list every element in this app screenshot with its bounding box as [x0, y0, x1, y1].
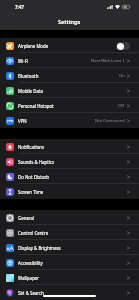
button[interactable]: Sounds & Haptics	[0, 154, 139, 169]
staticText: Next Web Lines 1	[91, 58, 125, 64]
staticText: Control Centre	[18, 230, 49, 236]
button[interactable]: Wi-Fi	[0, 53, 139, 68]
staticText: 7:47	[15, 4, 24, 10]
staticText: Airplane Mode	[18, 43, 49, 49]
button[interactable]: Bluetooth	[0, 68, 139, 83]
staticText: On	[119, 73, 125, 79]
button[interactable]: Personal Hotspot	[0, 98, 139, 113]
staticText: Notifications	[18, 144, 45, 150]
staticText: Do Not Disturb	[18, 174, 49, 180]
staticText: Settings	[58, 18, 81, 26]
button[interactable]: Notifications	[0, 139, 139, 154]
staticText: Screen Time	[18, 189, 44, 195]
staticText: Mobile Data	[18, 88, 43, 94]
button[interactable]: Wallpaper	[0, 270, 139, 285]
button[interactable]: Control Centre	[0, 225, 139, 240]
button[interactable]: VPN	[0, 113, 139, 128]
staticText: VPN	[18, 118, 27, 124]
button[interactable]: Airplane Mode	[0, 38, 139, 53]
staticText: Accessibility	[18, 260, 43, 266]
button[interactable]: Accessibility	[0, 255, 139, 270]
staticText: Wi-Fi	[18, 58, 29, 64]
button[interactable]: Display & Brightness	[0, 240, 139, 255]
button[interactable]: General	[0, 210, 139, 225]
staticText: Off	[118, 103, 125, 109]
staticText: General	[18, 215, 35, 221]
staticText: Siri & Search	[18, 290, 44, 296]
staticText: Not Connected	[95, 118, 125, 124]
staticText: Sounds & Haptics	[18, 159, 55, 165]
button[interactable]: Screen Time	[0, 184, 139, 199]
staticText: Wallpaper	[18, 275, 39, 281]
button[interactable]: Siri & Search	[0, 285, 139, 300]
staticText: Personal Hotspot	[18, 103, 54, 109]
button[interactable]: Mobile Data	[0, 83, 139, 98]
staticText: Bluetooth	[18, 73, 39, 79]
staticText: Display & Brightness	[18, 245, 61, 251]
other: Airplane Mode toggle	[116, 42, 130, 50]
button[interactable]: Do Not Disturb	[0, 169, 139, 184]
